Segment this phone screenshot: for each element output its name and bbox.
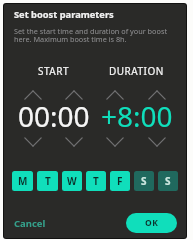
button[interactable]: T — [86, 171, 106, 191]
button[interactable]: Decrease duration hours — [94, 137, 136, 147]
button[interactable]: Decrease duration minutes — [136, 137, 178, 147]
button[interactable]: S — [134, 171, 154, 191]
staticText: T — [93, 174, 99, 188]
button[interactable]: Decrease start hour — [12, 137, 53, 147]
button[interactable]: M — [12, 171, 33, 191]
staticText: START — [38, 64, 70, 78]
button[interactable]: T — [37, 171, 58, 191]
button[interactable]: Cancel — [13, 213, 47, 233]
staticText: F — [117, 174, 123, 188]
staticText: +8:00 — [101, 97, 173, 135]
button[interactable]: Increase start minute — [53, 90, 94, 100]
staticText: W — [67, 174, 77, 188]
button[interactable]: Decrease start minute — [53, 137, 94, 147]
button[interactable]: W — [62, 171, 82, 191]
button[interactable]: Increase duration hours — [94, 90, 136, 100]
button[interactable]: OK — [126, 213, 177, 233]
staticText: Set the start time and duration of your … — [14, 26, 170, 44]
button[interactable]: S — [158, 171, 178, 191]
staticText: M — [18, 174, 28, 188]
staticText: 00:00 — [18, 97, 90, 135]
staticText: OK — [145, 217, 159, 229]
staticText: S — [165, 174, 171, 188]
button[interactable]: Increase duration minutes — [136, 90, 178, 100]
staticText: S — [141, 174, 147, 188]
staticText: DURATION — [109, 64, 164, 78]
staticText: T — [45, 174, 51, 188]
staticText: Cancel — [14, 217, 46, 230]
staticText: Set boost parameters — [14, 8, 114, 21]
button[interactable]: Increase start hour — [12, 90, 53, 100]
button[interactable]: F — [110, 171, 130, 191]
